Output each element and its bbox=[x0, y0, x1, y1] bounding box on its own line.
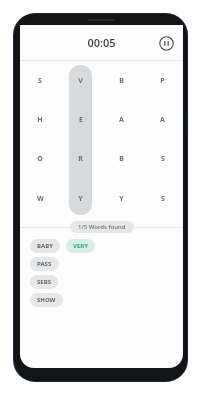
button[interactable]: E bbox=[60, 100, 101, 139]
button[interactable]: SEBS bbox=[30, 275, 58, 289]
staticText: 1/5 Words found bbox=[78, 223, 126, 231]
staticText: S bbox=[161, 154, 165, 164]
button[interactable]: Pause bbox=[157, 34, 175, 52]
staticText: VERY bbox=[73, 242, 88, 250]
button[interactable]: BABY bbox=[30, 239, 60, 253]
button[interactable]: Y bbox=[101, 179, 142, 219]
staticText: B bbox=[119, 76, 124, 86]
staticText: P bbox=[160, 76, 165, 86]
button[interactable]: B bbox=[101, 139, 142, 179]
button[interactable]: O bbox=[20, 139, 60, 179]
button[interactable]: W bbox=[20, 179, 60, 219]
button[interactable]: R bbox=[60, 139, 101, 179]
staticText: E bbox=[79, 115, 83, 125]
staticText: H bbox=[37, 115, 43, 125]
button[interactable]: SHOW bbox=[30, 293, 63, 307]
staticText: W bbox=[37, 194, 44, 204]
button[interactable]: VERY bbox=[66, 239, 95, 253]
button[interactable]: B bbox=[101, 61, 142, 100]
staticText: BABY bbox=[37, 242, 53, 250]
staticText: PASS bbox=[37, 260, 52, 268]
button[interactable]: P bbox=[142, 61, 183, 100]
button[interactable]: A bbox=[142, 100, 183, 139]
button[interactable]: S bbox=[142, 139, 183, 179]
staticText: Y bbox=[119, 194, 124, 204]
staticText: B bbox=[119, 154, 124, 164]
staticText: R bbox=[78, 154, 83, 164]
staticText: O bbox=[37, 154, 43, 164]
staticText: S bbox=[38, 76, 42, 86]
button[interactable]: S bbox=[142, 179, 183, 219]
staticText: Y bbox=[78, 194, 83, 204]
staticText: 00:05 bbox=[87, 35, 116, 50]
button[interactable]: V bbox=[60, 61, 101, 100]
staticText: SHOW bbox=[37, 296, 56, 304]
button[interactable]: H bbox=[20, 100, 60, 139]
button[interactable]: PASS bbox=[30, 257, 59, 271]
staticText: A bbox=[160, 115, 165, 125]
button[interactable]: S bbox=[20, 61, 60, 100]
staticText: A bbox=[119, 115, 124, 125]
staticText: V bbox=[78, 76, 83, 86]
button[interactable]: A bbox=[101, 100, 142, 139]
staticText: SEBS bbox=[37, 278, 51, 286]
button[interactable]: Y bbox=[60, 179, 101, 219]
staticText: S bbox=[161, 194, 165, 204]
